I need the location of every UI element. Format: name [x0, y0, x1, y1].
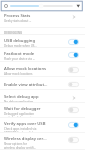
staticText: Show options for wireless display certif… — [4, 142, 37, 150]
button[interactable]: Wait for debugger — [0, 103, 85, 118]
button[interactable]: Process Stats — [0, 12, 85, 28]
button[interactable]: Open — [69, 13, 79, 21]
staticText: Verify apps over USB — [4, 121, 46, 127]
button[interactable]: Switch on — [68, 39, 79, 45]
button[interactable]: Verify apps over USB — [0, 118, 85, 133]
button[interactable]: Switch off — [68, 67, 79, 73]
button[interactable]: Switch off — [68, 82, 79, 87]
button[interactable]: Switch on — [68, 52, 79, 58]
button[interactable]: Fastboot mode — [0, 48, 85, 62]
button[interactable]: Select debug app — [0, 90, 85, 103]
staticText: Geeky stats about running processes — [4, 19, 32, 23]
staticText: Select debug app — [4, 94, 39, 100]
staticText: DEBUGGING — [4, 31, 23, 35]
button[interactable]: Switch off — [68, 107, 79, 113]
button[interactable]: USB debugging — [0, 35, 85, 48]
staticText: Check apps installed via ADB/ADT for har… — [4, 127, 37, 133]
staticText: Debug mode when USB is connected — [4, 44, 37, 48]
staticText: Wireless display certification — [4, 136, 48, 142]
staticText: No debug application set — [4, 100, 37, 103]
button[interactable]: Open — [69, 94, 79, 102]
button[interactable]: Switch off — [68, 137, 79, 143]
button[interactable]: Wireless display certification — [0, 133, 85, 150]
staticText: Flash your device via USB — [4, 57, 37, 61]
staticText: USB debugging — [4, 38, 35, 44]
staticText: Wait for debugger — [4, 106, 41, 112]
button[interactable]: Settings — [3, 3, 9, 9]
staticText: Debugged application waits for debugger … — [4, 112, 37, 118]
button[interactable]: Enable view attribute inspection — [0, 77, 85, 90]
staticText: Fastboot mode — [4, 51, 35, 57]
button[interactable]: Switch on — [68, 122, 79, 128]
staticText: Process Stats — [4, 13, 31, 19]
button[interactable]: Allow mock locations — [0, 62, 85, 77]
staticText: Allow mock locations — [4, 66, 47, 72]
staticText: Allow mock locations — [4, 72, 37, 76]
staticText: Enable view attribute inspection — [4, 82, 48, 88]
